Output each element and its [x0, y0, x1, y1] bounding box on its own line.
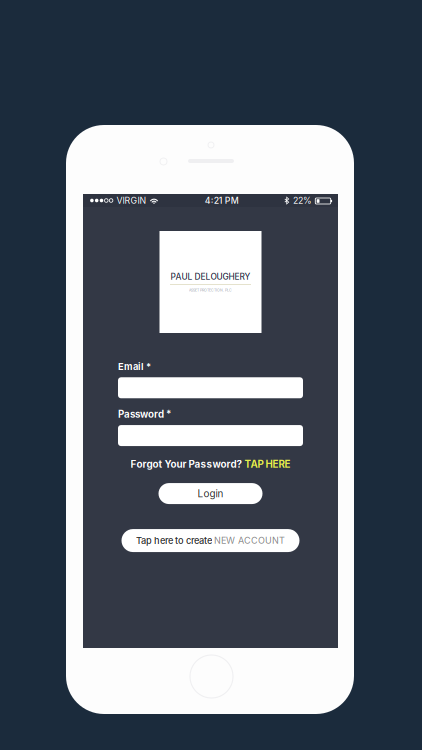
staticText: NEW ACCOUNT [214, 535, 285, 546]
staticText: 4:21 PM [205, 195, 239, 206]
staticText: Password * [118, 408, 171, 420]
button[interactable]: Tap here to create [121, 529, 299, 552]
staticText: Login [197, 488, 223, 499]
button[interactable]: Login [158, 483, 262, 504]
staticText: VIRGIN [116, 195, 146, 206]
staticText: PAUL DELOUGHERY [170, 272, 250, 282]
button[interactable]: Forgot Your Password? [118, 459, 303, 469]
staticText: 22% [293, 195, 312, 206]
staticText: Email * [118, 361, 151, 372]
staticText: TAP HERE [244, 458, 290, 470]
staticText: ASSET PROTECTION, PLC [189, 288, 232, 292]
staticText: Tap here to create [136, 535, 212, 546]
staticText: Forgot Your Password? [130, 458, 244, 470]
